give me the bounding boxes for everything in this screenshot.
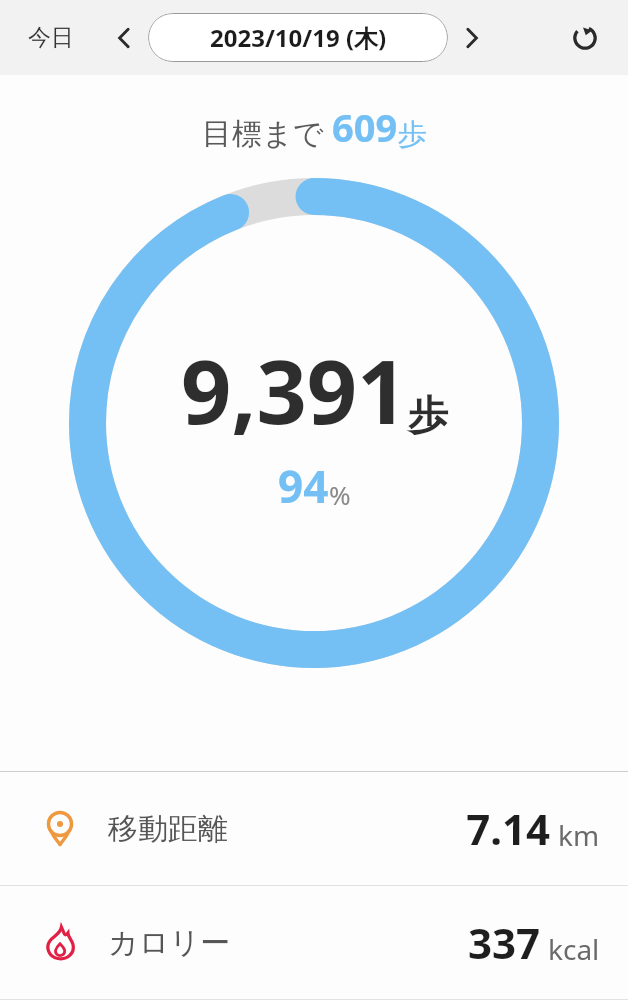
staticText: 歩 — [408, 390, 448, 440]
button[interactable]: Next day — [450, 16, 494, 60]
staticText: 609 — [332, 101, 398, 153]
button[interactable]: 2023/10/19 (木) — [148, 13, 448, 62]
staticText: kcal — [548, 930, 600, 968]
staticText: 歩 — [398, 116, 427, 153]
button[interactable]: Previous day — [102, 16, 146, 60]
button[interactable]: 今日 — [18, 17, 84, 58]
other: Calories — [40, 923, 80, 963]
staticText: km — [558, 816, 600, 854]
staticText: 目標まで — [202, 112, 332, 153]
staticText: 移動距離 — [108, 810, 228, 848]
staticText: 7.14 — [466, 800, 550, 857]
button[interactable]: Refresh — [560, 13, 610, 63]
staticText: カロリー — [108, 924, 231, 962]
staticText: 9,391 — [181, 330, 408, 450]
other: Distance — [40, 809, 80, 849]
staticText: 337 — [467, 914, 540, 971]
staticText: 94 — [278, 456, 329, 516]
staticText: 2023/10/19 (木) — [210, 21, 387, 54]
staticText: % — [329, 477, 351, 512]
button[interactable]: Distance — [0, 772, 628, 885]
button[interactable]: Calories — [0, 886, 628, 999]
staticText: 今日 — [28, 23, 74, 52]
